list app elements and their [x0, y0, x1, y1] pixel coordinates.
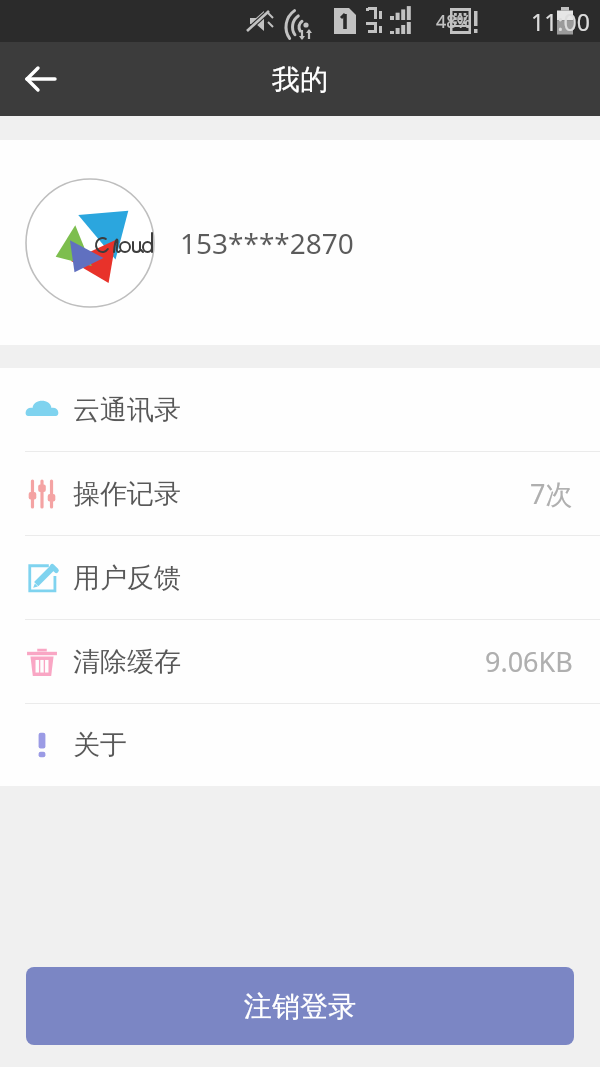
- button[interactable]: 关于: [0, 704, 600, 786]
- button[interactable]: 153****2870: [0, 140, 600, 345]
- staticText: 9.06KB: [485, 643, 573, 680]
- button[interactable]: 注销登录: [26, 967, 574, 1045]
- staticText: 我的: [272, 62, 328, 97]
- button[interactable]: 清除缓存: [0, 620, 600, 703]
- button[interactable]: Back: [12, 50, 70, 108]
- button[interactable]: 操作记录: [0, 452, 600, 535]
- staticText: 153****2870: [180, 224, 354, 262]
- staticText: 云通讯录: [73, 393, 181, 427]
- staticText: 用户反馈: [73, 561, 181, 595]
- button[interactable]: 用户反馈: [0, 536, 600, 619]
- staticText: 7次: [530, 475, 573, 512]
- button[interactable]: 云通讯录: [0, 368, 600, 451]
- staticText: 操作记录: [73, 477, 181, 511]
- staticText: 注销登录: [244, 989, 356, 1024]
- staticText: 关于: [73, 728, 127, 762]
- staticText: 11:00: [531, 6, 590, 37]
- staticText: 48%: [436, 9, 472, 34]
- staticText: 清除缓存: [73, 645, 181, 679]
